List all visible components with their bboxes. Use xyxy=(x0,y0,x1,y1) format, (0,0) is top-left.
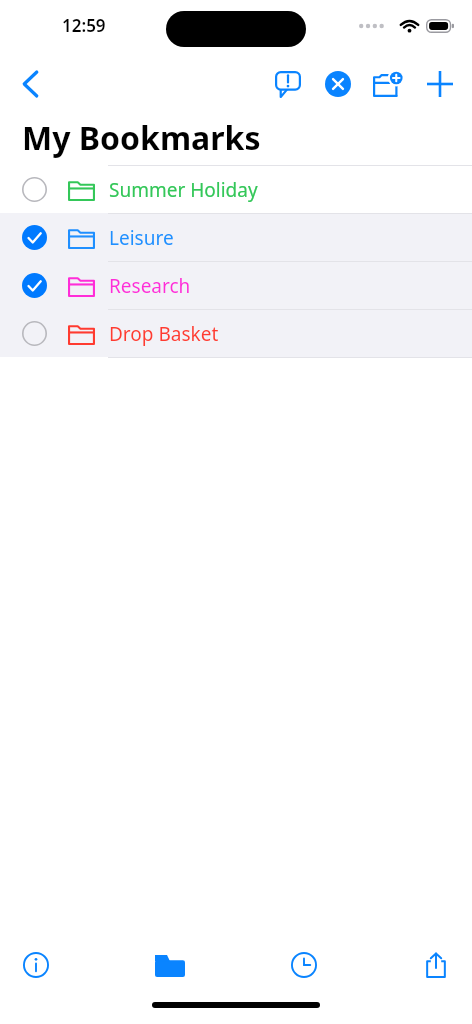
staticText: Summer Holiday xyxy=(109,177,258,203)
button[interactable]: Info xyxy=(12,941,60,989)
button[interactable]: Add xyxy=(414,58,466,110)
button[interactable]: Back xyxy=(8,62,52,106)
staticText: Research xyxy=(109,273,191,299)
staticText: Drop Basket xyxy=(109,321,219,347)
button[interactable]: Share xyxy=(412,941,460,989)
button[interactable]: Close xyxy=(314,60,362,108)
button[interactable]: Research xyxy=(0,262,472,309)
button[interactable]: Drop Basket xyxy=(0,310,472,357)
button[interactable]: History xyxy=(280,941,328,989)
staticText: My Bookmarks xyxy=(22,116,261,160)
staticText: Leisure xyxy=(109,225,174,251)
button[interactable]: New Folder xyxy=(362,58,414,110)
button[interactable]: Folders xyxy=(146,941,194,989)
button[interactable]: Summer Holiday xyxy=(0,166,472,213)
button[interactable]: Notes xyxy=(262,58,314,110)
staticText: 12:59 xyxy=(62,14,106,37)
button[interactable]: Leisure xyxy=(0,214,472,261)
